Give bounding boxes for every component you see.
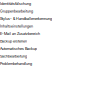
staticText: Inhaltseinstellungen [0,24,33,28]
staticText: Sachbearbeitung [0,54,27,58]
staticText: Problembehandlung [0,61,32,66]
staticText: Stylus- & Handballenerkennung [0,16,52,21]
staticText: Identitätsfälschung [0,1,31,6]
staticText: Backup erstellen [0,39,27,43]
staticText: Automatisches Backup [0,46,37,51]
staticText: Gruppenbearbeitung [0,9,33,13]
staticText: E-Mail an Zusatzbereich [0,31,40,36]
